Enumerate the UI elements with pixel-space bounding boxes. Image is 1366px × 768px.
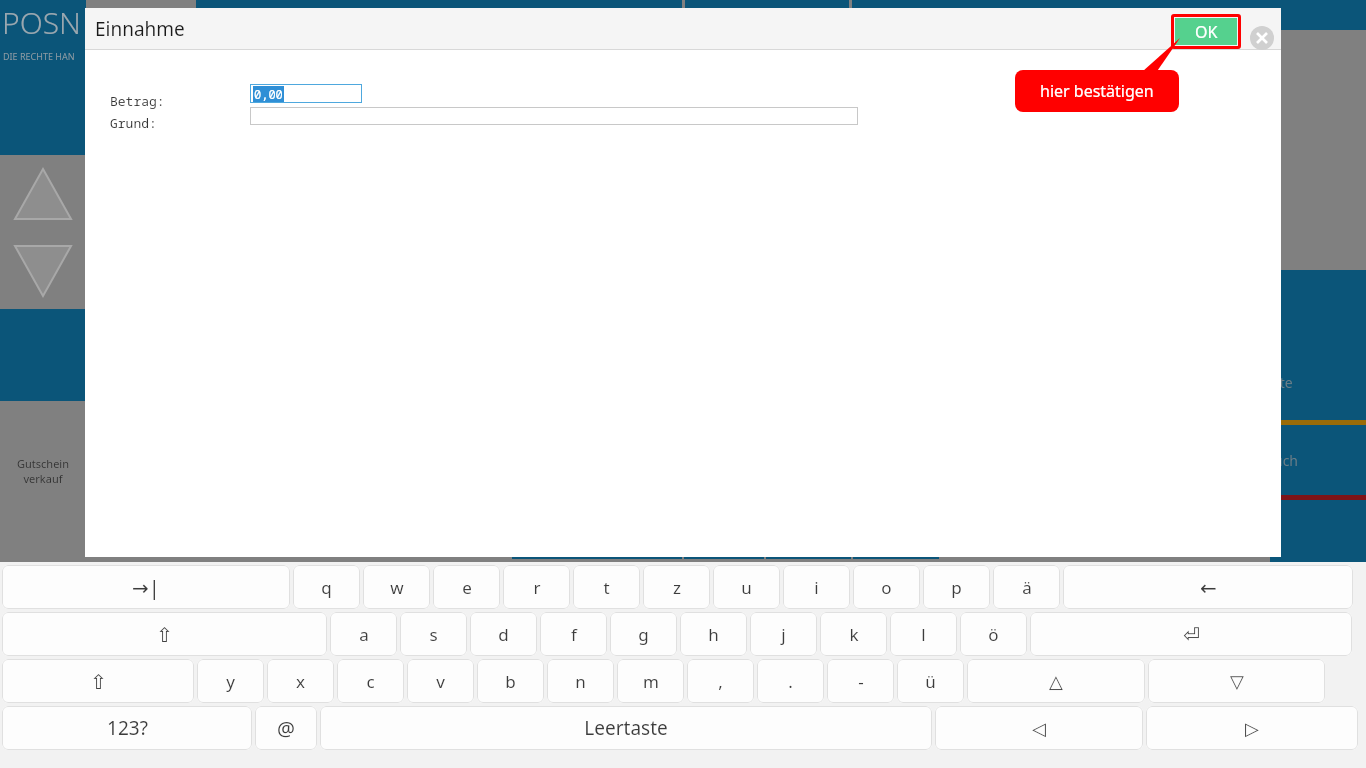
staticText: c (366, 670, 375, 693)
staticText: 0,00 (254, 86, 283, 102)
staticText: d (498, 623, 509, 646)
button[interactable]: 0,00 (250, 84, 362, 103)
button[interactable]: k (820, 612, 887, 656)
button[interactable]: ⇧ (2, 612, 327, 656)
button[interactable]: - (827, 659, 894, 703)
staticText: ▷ (1245, 718, 1259, 739)
button[interactable]: . (757, 659, 824, 703)
button[interactable] (1270, 500, 1366, 768)
button[interactable]: x (267, 659, 334, 703)
staticText: u (741, 576, 752, 599)
button[interactable]: l (890, 612, 957, 656)
button[interactable]: Gutschein verkauf (0, 421, 86, 521)
button[interactable]: ⏎ (1030, 612, 1352, 656)
button[interactable]: h (680, 612, 747, 656)
button[interactable]: g (610, 612, 677, 656)
button[interactable]: ⇧ (2, 659, 194, 703)
staticText: z (673, 576, 681, 599)
staticText: . (788, 670, 793, 693)
staticText: n (575, 670, 586, 693)
staticText: ⇧ (90, 670, 107, 693)
staticText: ⇧ (156, 623, 173, 646)
staticText: Leertaste (584, 715, 668, 741)
staticText: ◁ (1032, 718, 1046, 739)
button[interactable]: →| (2, 565, 290, 609)
staticText: k (849, 623, 859, 646)
staticText: ← (1200, 576, 1217, 599)
button[interactable] (852, 0, 1366, 14)
button[interactable]: OK (1175, 18, 1237, 45)
button[interactable]: Leertaste (320, 706, 932, 750)
button[interactable]: f (540, 612, 607, 656)
button[interactable]: r (503, 565, 570, 609)
staticText: , (718, 670, 723, 693)
button[interactable]: z (643, 565, 710, 609)
staticText: @ (277, 715, 295, 742)
button[interactable]: i (783, 565, 850, 609)
staticText: 123? (107, 715, 148, 741)
staticText: x (296, 670, 305, 693)
button[interactable]: ← (1063, 565, 1353, 609)
button[interactable] (685, 0, 849, 14)
button[interactable]: q (293, 565, 360, 609)
button[interactable]: @ (255, 706, 317, 750)
button[interactable]: a (330, 612, 397, 656)
staticText: Grund: (110, 114, 157, 132)
staticText: e (462, 576, 472, 599)
button[interactable]: j (750, 612, 817, 656)
staticText: →| (132, 574, 160, 601)
staticText: s (429, 623, 438, 646)
staticText: o (881, 576, 892, 599)
button[interactable]: m (617, 659, 684, 703)
staticText: f (571, 623, 577, 646)
staticText: b (505, 670, 516, 693)
button[interactable] (1270, 270, 1366, 345)
button[interactable]: ◁ (935, 706, 1143, 750)
button[interactable]: y (197, 659, 264, 703)
button[interactable]: rte (1270, 345, 1366, 420)
button[interactable] (196, 0, 682, 14)
staticText: m (643, 670, 659, 693)
button[interactable]: ä (993, 565, 1060, 609)
button[interactable]: c (337, 659, 404, 703)
staticText: t (603, 576, 610, 599)
button[interactable]: △ (967, 659, 1145, 703)
staticText: w (390, 576, 404, 599)
button[interactable]: e (433, 565, 500, 609)
staticText: p (951, 576, 962, 599)
button[interactable]: n (547, 659, 614, 703)
button[interactable] (0, 379, 86, 401)
button[interactable]: , (687, 659, 754, 703)
button[interactable]: s (400, 612, 467, 656)
staticText: h (708, 623, 719, 646)
button[interactable]: ü (897, 659, 964, 703)
button[interactable]: p (923, 565, 990, 609)
button[interactable]: ö (960, 612, 1027, 656)
button[interactable] (250, 107, 858, 125)
staticText: DIE RECHTE HAN (3, 50, 75, 62)
button[interactable]: Scroll up (0, 155, 86, 232)
staticText: i (814, 576, 819, 599)
staticText: △ (1049, 671, 1063, 692)
button[interactable]: u (713, 565, 780, 609)
staticText: OK (1195, 21, 1218, 43)
staticText: l (921, 623, 926, 646)
button[interactable]: o (853, 565, 920, 609)
button[interactable]: b (477, 659, 544, 703)
button[interactable]: 123? (2, 706, 252, 750)
button[interactable]: t (573, 565, 640, 609)
button[interactable]: v (407, 659, 474, 703)
button[interactable]: Close (1250, 26, 1274, 50)
staticText: ä (1022, 576, 1032, 599)
staticText: v (436, 670, 445, 693)
staticText: Betrag: (110, 92, 165, 110)
button[interactable]: ▽ (1148, 659, 1325, 703)
button[interactable]: uch (1270, 425, 1366, 495)
button[interactable]: w (363, 565, 430, 609)
button[interactable]: ▷ (1146, 706, 1358, 750)
staticText: a (359, 623, 369, 646)
staticText: POSN (2, 2, 81, 43)
button[interactable]: Scroll down (0, 232, 86, 309)
staticText: rte (1274, 373, 1293, 392)
button[interactable]: d (470, 612, 537, 656)
